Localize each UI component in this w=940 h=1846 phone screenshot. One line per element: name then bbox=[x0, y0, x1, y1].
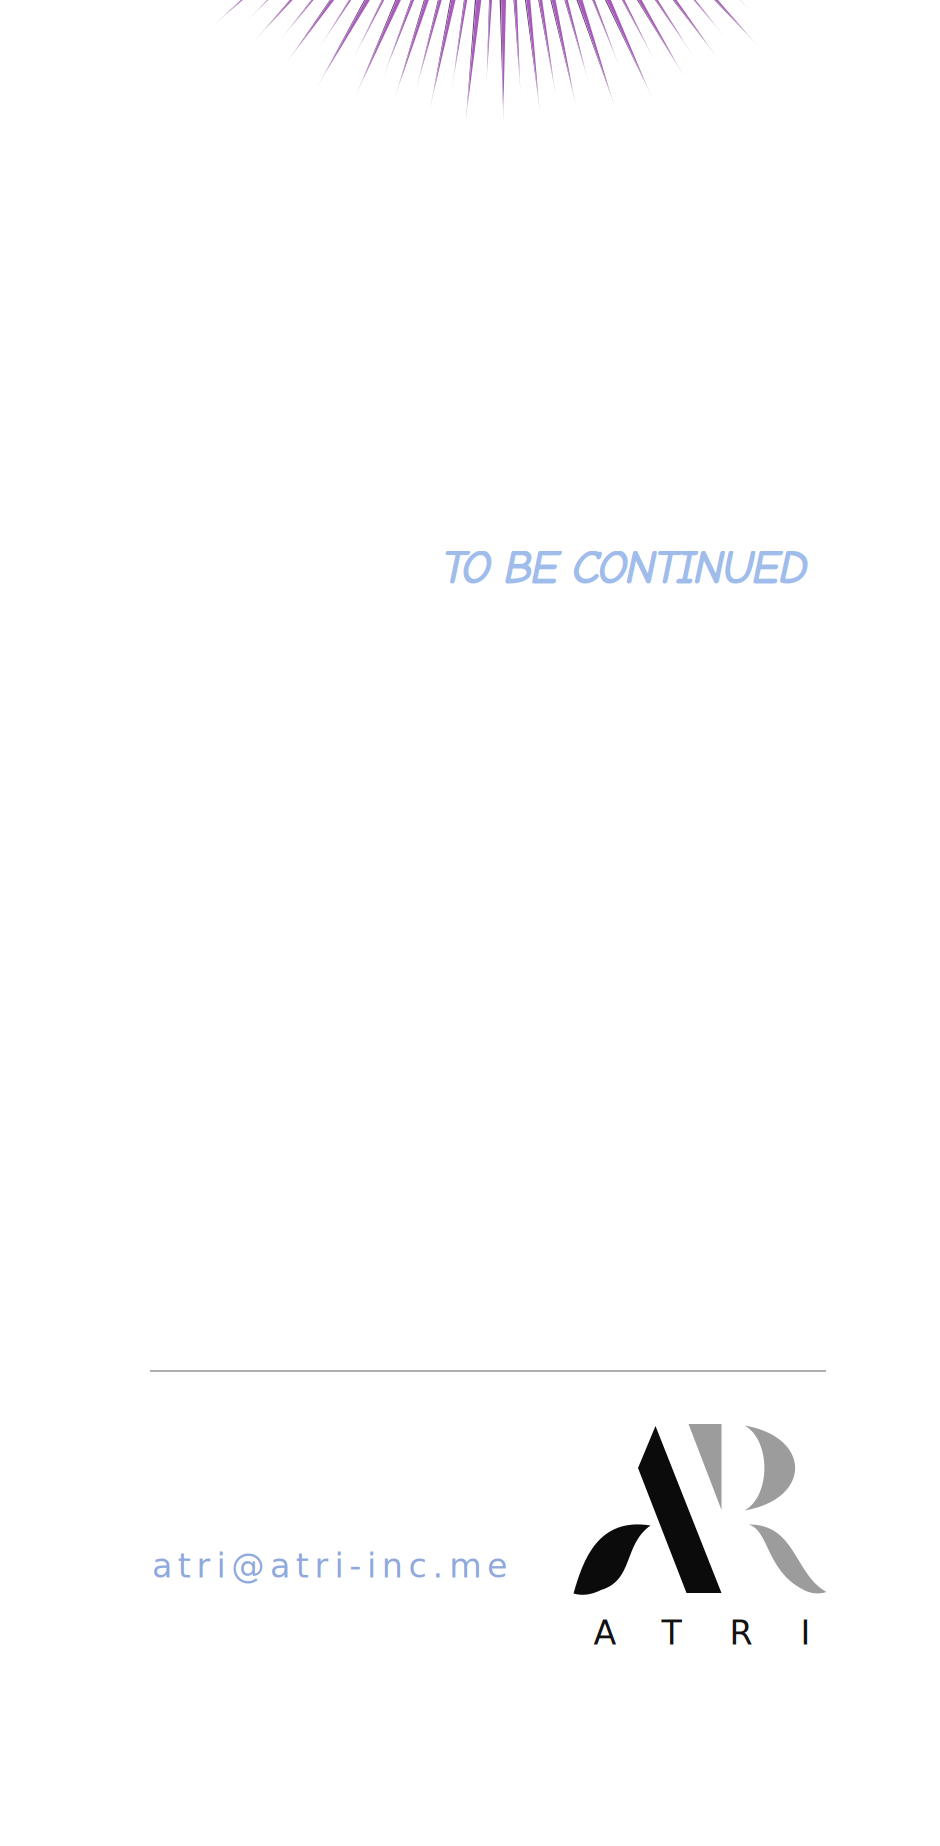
staticText: atri@atri-inc.me bbox=[152, 1547, 508, 1585]
staticText: ATRI bbox=[593, 1614, 810, 1652]
staticText: TO BE CONTINUED bbox=[442, 540, 808, 596]
button[interactable]: atri@atri-inc.me bbox=[152, 1547, 508, 1585]
